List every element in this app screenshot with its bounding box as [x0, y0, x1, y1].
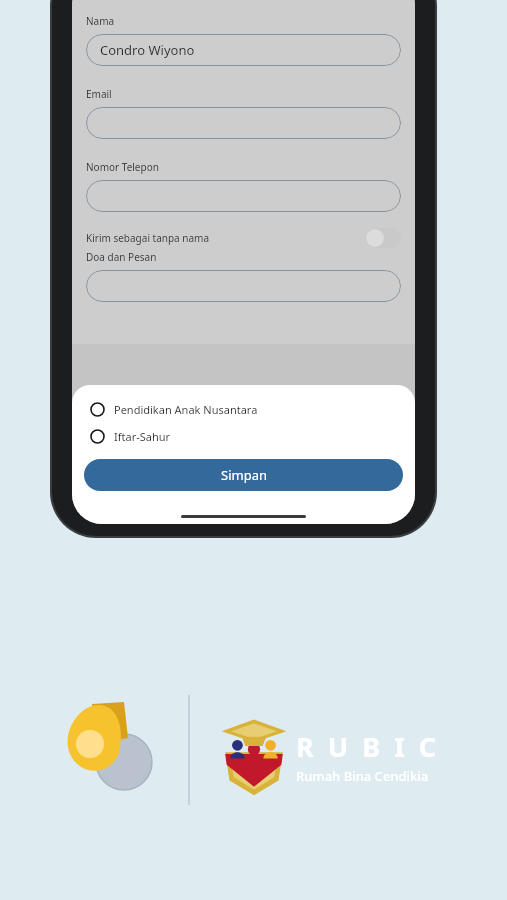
button[interactable]: Iftar-Sahur [72, 426, 415, 447]
button[interactable]: Simpan [84, 459, 403, 491]
button[interactable] [86, 107, 401, 139]
staticText: Doa dan Pesan [86, 250, 157, 264]
staticText: Pendidikan Anak Nusantara [114, 402, 258, 417]
staticText: Iftar-Sahur [114, 429, 171, 444]
staticText: Nama [86, 14, 115, 28]
button[interactable] [86, 270, 401, 302]
staticText: Kirim sebagai tanpa nama [86, 231, 210, 245]
button[interactable] [86, 180, 401, 212]
staticText: Condro Wiyono [100, 41, 195, 59]
staticText: R U B I C [296, 728, 437, 765]
staticText: Email [86, 87, 112, 101]
staticText: Nomor Telepon [86, 160, 159, 174]
button[interactable]: Condro Wiyono [86, 34, 401, 66]
staticText: Simpan [221, 466, 267, 484]
staticText: Rumah Bina Cendikia [296, 767, 429, 785]
button[interactable]: Pendidikan Anak Nusantara [72, 399, 415, 420]
button[interactable]: Kirim sebagai tanpa nama [365, 228, 401, 248]
